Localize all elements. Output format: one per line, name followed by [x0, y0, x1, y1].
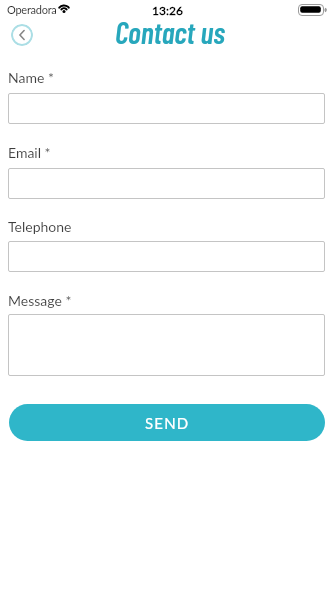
- button[interactable]: [8, 314, 325, 376]
- staticText: Contact us: [115, 14, 225, 50]
- staticText: Email *: [8, 144, 51, 161]
- button[interactable]: SEND: [9, 404, 325, 441]
- button[interactable]: [11, 24, 33, 46]
- staticText: Name *: [8, 69, 54, 86]
- staticText: SEND: [145, 414, 190, 432]
- button[interactable]: [8, 168, 325, 199]
- staticText: Telephone: [8, 218, 72, 235]
- staticText: Operadora: [7, 3, 57, 16]
- button[interactable]: [8, 241, 325, 272]
- staticText: Message *: [8, 292, 72, 309]
- button[interactable]: [8, 93, 325, 124]
- staticText: 13:26: [152, 3, 183, 17]
